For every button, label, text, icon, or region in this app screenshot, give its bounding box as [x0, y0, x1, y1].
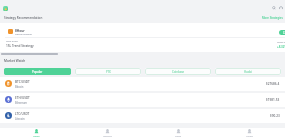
- staticText: Huobi: [244, 70, 252, 74]
- button[interactable]: LTC/USDT: [0, 109, 285, 123]
- staticText: BTC/USDT: [15, 80, 30, 84]
- staticText: Home: [33, 135, 40, 138]
- button[interactable]: Search: [272, 6, 276, 10]
- button[interactable]: BTC/USDT: [0, 77, 285, 91]
- button[interactable]: ETH/USDT: [0, 93, 285, 107]
- button[interactable]: Home: [0, 128, 72, 138]
- button[interactable]: Markets: [72, 128, 143, 138]
- staticText: Assets: [246, 135, 253, 138]
- button[interactable]: Huobi: [215, 68, 281, 75]
- staticText: 15L Trend Strategy: [6, 44, 34, 48]
- button[interactable]: FTX: [75, 68, 141, 75]
- staticText: Today profit: [277, 41, 285, 44]
- staticText: Trade: [175, 135, 182, 138]
- staticText: $1981.53: [266, 98, 280, 102]
- button[interactable]: Coinbase: [145, 68, 211, 75]
- staticText: Bitcoin: [15, 85, 24, 89]
- staticText: Total profit: [6, 40, 18, 43]
- button[interactable]: Popular: [4, 68, 71, 75]
- staticText: Litecoin: [15, 117, 25, 121]
- staticText: Official strategy: [15, 33, 32, 36]
- staticText: +8.32%: [277, 45, 285, 49]
- button[interactable]: 8Hour: [0, 23, 285, 52]
- staticText: $90.23: [270, 114, 280, 118]
- staticText: Coinbase: [172, 70, 185, 74]
- staticText: Market Watch: [4, 59, 26, 63]
- staticText: Strategy Recommendation: [4, 16, 43, 20]
- staticText: 8Hour: [15, 29, 25, 33]
- staticText: ETH/USDT: [15, 96, 30, 100]
- staticText: FTX: [106, 70, 111, 74]
- staticText: Markets: [103, 135, 112, 138]
- staticText: LTC/USDT: [15, 112, 30, 116]
- button[interactable]: Trade: [143, 128, 214, 138]
- button[interactable]: Assets: [214, 128, 285, 138]
- button[interactable]: Customer service: [279, 6, 283, 10]
- button[interactable]: More Strategies: [262, 16, 283, 20]
- staticText: $27686.4: [266, 82, 280, 86]
- button[interactable]: Copy: [279, 30, 285, 35]
- staticText: Ethereum: [15, 101, 27, 105]
- staticText: Copy: [283, 31, 285, 35]
- staticText: Popular: [32, 70, 43, 74]
